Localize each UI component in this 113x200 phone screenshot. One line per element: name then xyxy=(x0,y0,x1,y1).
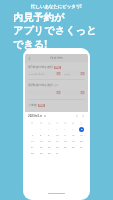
button[interactable]: 10 xyxy=(53,132,61,138)
staticText: 22 xyxy=(40,146,43,149)
button[interactable]: 28 xyxy=(28,150,37,156)
staticText: 2023年5月6日 xyxy=(29,72,45,75)
staticText: 内見予約が xyxy=(13,11,65,24)
staticText: 5 xyxy=(72,128,74,131)
staticText: 3 xyxy=(56,128,58,131)
button[interactable]: 21 xyxy=(28,144,37,150)
button[interactable]: Back xyxy=(25,54,88,62)
button[interactable]: 24 xyxy=(53,144,61,150)
staticText: 2 xyxy=(48,128,50,131)
button[interactable]: 16 xyxy=(45,138,53,144)
button[interactable]: 18 xyxy=(61,138,69,144)
button[interactable]: 29 xyxy=(37,150,45,156)
staticText: 11 xyxy=(64,134,67,137)
button[interactable]: 27 xyxy=(77,144,85,150)
staticText: 土 xyxy=(80,122,83,125)
button[interactable]: Next month xyxy=(81,114,85,118)
staticText: 水 xyxy=(56,122,59,125)
staticText: 23 xyxy=(48,146,51,149)
staticText: 10 xyxy=(56,134,59,137)
button[interactable] xyxy=(64,90,84,95)
staticText: 日 xyxy=(31,122,34,125)
staticText: 18 xyxy=(64,140,67,143)
staticText: 21 xyxy=(31,146,34,149)
staticText: 月 xyxy=(40,122,43,125)
button[interactable]: 13 xyxy=(77,132,85,138)
button[interactable]: 2023年5月6日 xyxy=(29,71,60,76)
staticText: 任意 xyxy=(54,84,59,87)
button[interactable]: 22 xyxy=(37,144,45,150)
staticText: 25 xyxy=(64,146,67,149)
button[interactable]: 15 xyxy=(37,138,45,144)
staticText: 13 xyxy=(80,134,83,137)
button[interactable]: 17 xyxy=(53,138,61,144)
staticText: 第2希望日時を選択 xyxy=(28,83,53,87)
staticText: 24 xyxy=(56,146,59,149)
button[interactable]: 30 xyxy=(45,150,53,156)
staticText: 忙しいあなたにピッタリ! xyxy=(31,3,82,9)
button[interactable]: 11 xyxy=(61,132,69,138)
staticText: 17 xyxy=(56,140,59,143)
staticText: 6 xyxy=(81,128,83,131)
staticText: 8 xyxy=(40,134,42,137)
staticText: 19 xyxy=(72,140,75,143)
button[interactable]: 7 xyxy=(28,132,37,138)
other: Back xyxy=(28,57,31,60)
staticText: 14 xyxy=(31,140,34,143)
staticText: 30 xyxy=(48,152,51,155)
staticText: 内見予約 xyxy=(50,56,63,60)
staticText: 31 xyxy=(56,152,59,155)
staticText: 1 xyxy=(40,128,42,131)
staticText: 9 xyxy=(48,134,50,137)
staticText: 20 xyxy=(80,140,83,143)
button[interactable] xyxy=(29,90,60,95)
staticText: ご要望 xyxy=(28,103,37,107)
staticText: 2023年5月 xyxy=(28,114,43,118)
button[interactable]: 26 xyxy=(69,144,77,150)
button[interactable]: 8 xyxy=(37,132,45,138)
button[interactable]: Previous month xyxy=(75,114,79,118)
staticText: 必須 xyxy=(55,66,60,69)
button[interactable]: 12 xyxy=(69,132,77,138)
staticText: 16 xyxy=(48,140,51,143)
staticText: 26 xyxy=(72,146,75,149)
button[interactable]: 6 xyxy=(77,126,85,132)
staticText: 10:00 xyxy=(64,72,71,75)
button[interactable]: 5 xyxy=(69,126,77,132)
button[interactable]: 31 xyxy=(53,150,61,156)
button[interactable]: 3 xyxy=(53,126,61,132)
staticText: アプリでさくっと xyxy=(13,24,97,37)
staticText: 27 xyxy=(80,146,83,149)
button[interactable]: 20 xyxy=(77,138,85,144)
staticText: 4 xyxy=(64,128,66,131)
staticText: 木 xyxy=(64,122,67,125)
button[interactable]: 25 xyxy=(61,144,69,150)
button[interactable]: 9 xyxy=(45,132,53,138)
staticText: 12 xyxy=(72,134,75,137)
staticText: 28 xyxy=(31,152,34,155)
staticText: できる! xyxy=(13,37,48,51)
staticText: 15 xyxy=(40,140,43,143)
button[interactable]: 19 xyxy=(69,138,77,144)
button[interactable]: 14 xyxy=(28,138,37,144)
staticText: 第1希望日時を選択 xyxy=(28,65,53,69)
button[interactable]: 23 xyxy=(45,144,53,150)
staticText: 7 xyxy=(32,134,34,137)
staticText: 金 xyxy=(72,122,75,125)
staticText: 火 xyxy=(48,122,51,125)
staticText: 29 xyxy=(40,152,43,155)
staticText: 必須 xyxy=(39,104,44,107)
button[interactable]: 10:00 xyxy=(64,71,84,76)
